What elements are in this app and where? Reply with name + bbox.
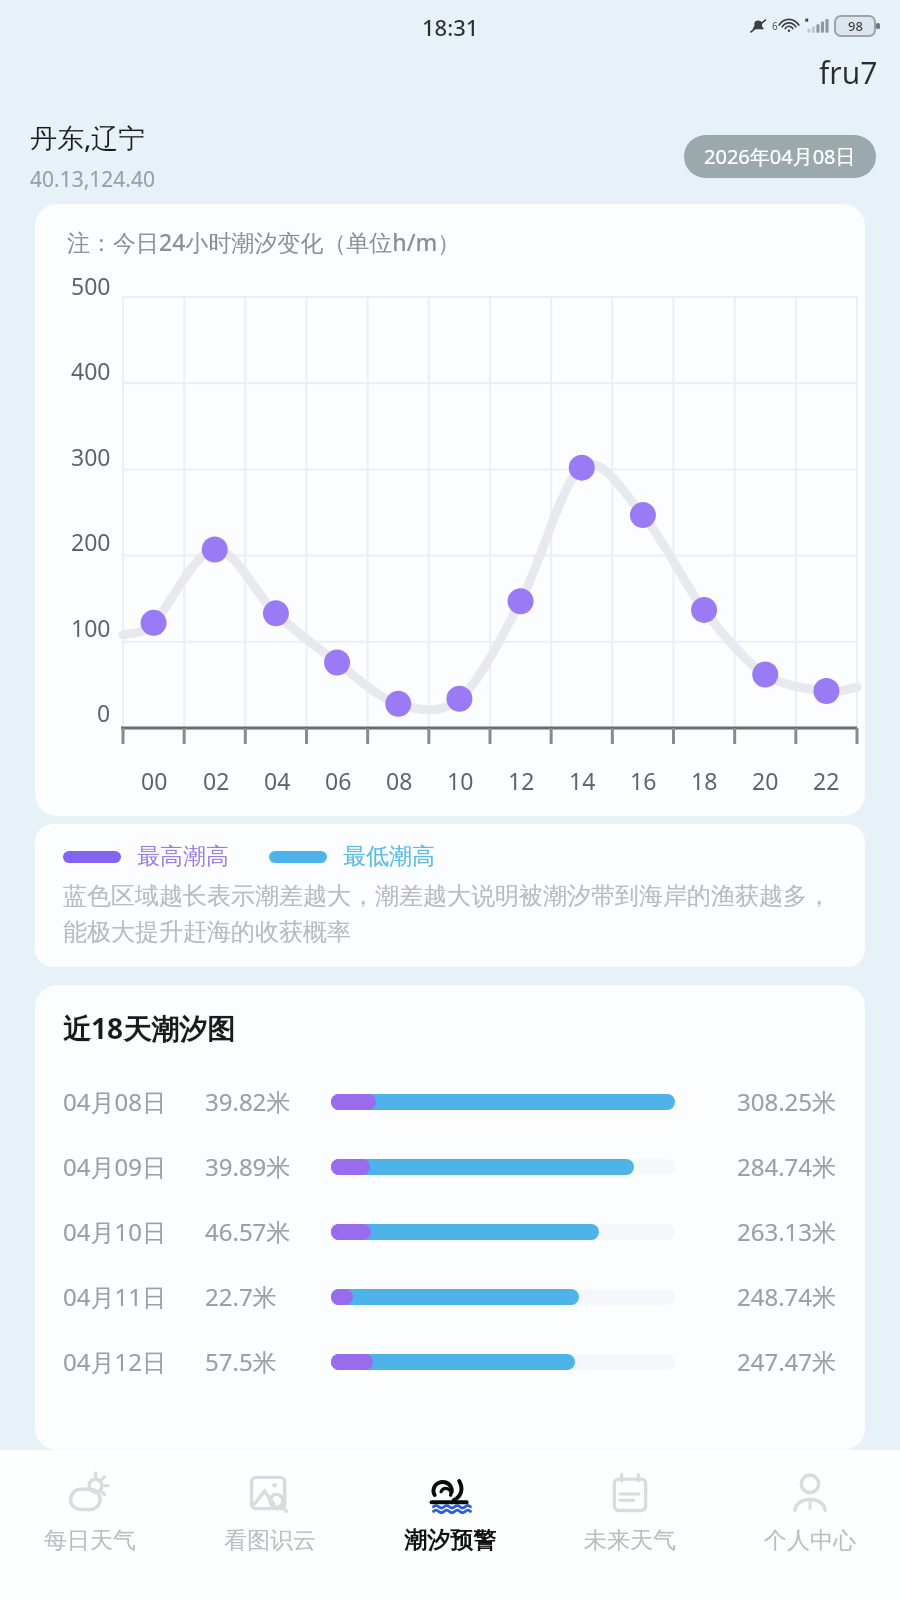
staticText: 39.82米 (205, 1085, 317, 1118)
staticText: 每日天气 (44, 1526, 136, 1555)
staticText: 04月09日 (63, 1150, 191, 1183)
staticText: 200 (71, 526, 111, 557)
staticText: 潮汐预警 (404, 1526, 496, 1555)
staticText: 04 (264, 765, 291, 796)
staticText: 04月10日 (63, 1215, 191, 1248)
staticText: 22 (813, 765, 840, 796)
staticText: 14 (569, 765, 596, 796)
staticText: 308.25米 (737, 1085, 837, 1118)
staticText: 18:31 (422, 12, 479, 42)
staticText: 40.13,124.40 (30, 165, 155, 194)
staticText: 08 (386, 765, 413, 796)
staticText: 最高潮高 (137, 842, 229, 871)
staticText: 02 (203, 765, 230, 796)
other: 未来天气 (607, 1470, 653, 1516)
staticText: fru7 (819, 52, 878, 93)
other: 潮汐预警 (427, 1470, 473, 1516)
staticText: 10 (447, 765, 474, 796)
staticText: 300 (71, 441, 111, 472)
staticText: 近18天潮汐图 (63, 1009, 236, 1047)
button[interactable]: 04月08日 (35, 1069, 865, 1134)
staticText: 22.7米 (205, 1280, 317, 1313)
staticText: 0 (97, 697, 111, 728)
button[interactable]: 04月09日 (35, 1134, 865, 1199)
staticText: 04月12日 (63, 1345, 191, 1378)
staticText: 46.57米 (205, 1215, 317, 1248)
staticText: 未来天气 (584, 1526, 676, 1555)
other: 看图识云 (247, 1470, 293, 1516)
button[interactable]: 04月10日 (35, 1199, 865, 1264)
staticText: 04月08日 (63, 1085, 191, 1118)
staticText: 04月11日 (63, 1280, 191, 1313)
staticText: 100 (71, 612, 111, 643)
staticText: 263.13米 (737, 1215, 837, 1248)
staticText: 500 (71, 270, 111, 301)
staticText: 98 (848, 17, 863, 35)
staticText: 400 (71, 355, 111, 386)
other: 个人中心 (787, 1470, 833, 1516)
staticText: 看图识云 (224, 1526, 316, 1555)
staticText: 57.5米 (205, 1345, 317, 1378)
staticText: 00 (141, 765, 168, 796)
staticText: 06 (325, 765, 352, 796)
button[interactable]: 每日天气 (0, 1450, 180, 1600)
staticText: 284.74米 (737, 1150, 837, 1183)
button[interactable]: 2026年04月08日 (684, 135, 876, 178)
staticText: 注：今日24小时潮汐变化（单位h/m） (67, 226, 461, 257)
button[interactable]: 04月12日 (35, 1329, 865, 1394)
staticText: 16 (630, 765, 657, 796)
button[interactable]: 潮汐预警 (360, 1450, 540, 1600)
staticText: 个人中心 (764, 1526, 856, 1555)
staticText: 20 (752, 765, 779, 796)
button[interactable]: 个人中心 (720, 1450, 900, 1600)
button[interactable]: 未来天气 (540, 1450, 720, 1600)
staticText: 最低潮高 (343, 842, 435, 871)
staticText: 247.47米 (737, 1345, 837, 1378)
staticText: 蓝色区域越长表示潮差越大，潮差越大说明被潮汐带到海岸的渔获越多，能极大提升赶海的… (63, 881, 843, 947)
staticText: 18 (691, 765, 718, 796)
other: 每日天气 (67, 1470, 113, 1516)
button[interactable]: 看图识云 (180, 1450, 360, 1600)
staticText: 丹东,辽宁 (30, 119, 146, 156)
staticText: 12 (508, 765, 535, 796)
staticText: 39.89米 (205, 1150, 317, 1183)
button[interactable]: 04月11日 (35, 1264, 865, 1329)
staticText: 2026年04月08日 (704, 143, 856, 170)
staticText: 248.74米 (737, 1280, 837, 1313)
staticText: 6 (772, 19, 778, 33)
